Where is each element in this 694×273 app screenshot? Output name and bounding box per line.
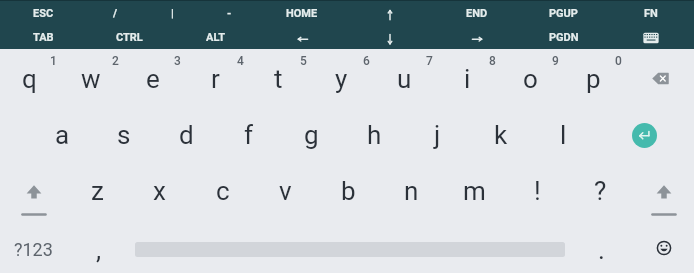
button[interactable]: t [249, 49, 312, 105]
button[interactable]: n [380, 161, 443, 217]
staticText: ALT [206, 31, 226, 44]
button[interactable]: m [443, 161, 506, 217]
button[interactable]: - [201, 1, 258, 25]
button[interactable]: x [128, 161, 191, 217]
button[interactable]: j [406, 105, 469, 161]
staticText: q [22, 64, 37, 94]
staticText: FN [644, 7, 658, 20]
staticText: v [279, 176, 292, 206]
staticText: ! [534, 176, 541, 206]
staticText: s [117, 120, 131, 150]
staticText: ? [594, 176, 607, 206]
button[interactable]: c [191, 161, 254, 217]
button[interactable]: Backspace [627, 49, 694, 105]
button[interactable]: a [31, 105, 93, 161]
button[interactable]: ?123 [0, 217, 66, 273]
staticText: PGDN [549, 31, 579, 44]
button[interactable]: h [343, 105, 406, 161]
staticText: CTRL [116, 31, 143, 44]
button[interactable]: PGDN [520, 25, 607, 49]
staticText: 1 [50, 54, 57, 68]
staticText: 8 [489, 54, 496, 68]
button[interactable]: ESC [0, 1, 87, 25]
staticText: c [216, 176, 230, 206]
staticText: / [113, 7, 118, 20]
staticText: ?123 [14, 239, 53, 260]
staticText: p [586, 64, 601, 94]
button[interactable]: Shift [632, 161, 694, 217]
button[interactable]: s [93, 105, 155, 161]
button[interactable]: u [375, 49, 438, 105]
staticText: g [304, 120, 319, 150]
button[interactable]: / [87, 1, 144, 25]
button[interactable]: . [568, 217, 631, 273]
staticText: 6 [363, 54, 370, 68]
staticText: l [560, 120, 567, 150]
button[interactable]: g [280, 105, 343, 161]
staticText: . [598, 235, 605, 265]
staticText: TAB [33, 31, 54, 44]
button[interactable]: TAB [0, 25, 86, 49]
button[interactable]: z [66, 161, 128, 217]
staticText: n [404, 176, 419, 206]
staticText: r [211, 64, 220, 94]
staticText: x [153, 176, 166, 206]
staticText: m [463, 176, 486, 206]
button[interactable]: Arrow right [433, 25, 520, 49]
staticText: u [397, 64, 412, 94]
staticText: f [244, 120, 254, 150]
staticText: 0 [615, 54, 622, 68]
staticText: HOME [286, 7, 318, 20]
staticText: b [341, 176, 356, 206]
button[interactable]: END [433, 1, 520, 25]
button[interactable]: ALT [172, 25, 259, 49]
staticText: j [434, 120, 441, 150]
staticText: y [335, 64, 348, 94]
staticText: t [274, 64, 283, 94]
staticText: , [96, 235, 102, 265]
button[interactable]: HOME [258, 1, 346, 25]
staticText: 4 [237, 54, 244, 68]
button[interactable]: Shift [0, 161, 66, 217]
button[interactable]: p [564, 49, 627, 105]
staticText: a [55, 120, 70, 150]
staticText: h [367, 120, 382, 150]
button[interactable]: ? [569, 161, 632, 217]
staticText: e [146, 64, 160, 94]
button[interactable]: Arrow down [346, 25, 433, 49]
button[interactable]: b [317, 161, 380, 217]
button[interactable]: o [501, 49, 564, 105]
staticText: PGUP [549, 7, 578, 20]
button[interactable]: r [186, 49, 249, 105]
button[interactable]: Emoji [631, 217, 694, 273]
button[interactable]: FN [607, 1, 694, 25]
button[interactable]: i [438, 49, 501, 105]
button[interactable]: e [124, 49, 186, 105]
staticText: d [179, 120, 194, 150]
button[interactable]: Arrow up [346, 1, 433, 25]
button[interactable]: CTRL [86, 25, 172, 49]
button[interactable]: Space [132, 217, 568, 273]
button[interactable]: y [312, 49, 375, 105]
staticText: w [81, 64, 101, 94]
button[interactable]: d [155, 105, 217, 161]
staticText: i [464, 64, 471, 94]
button[interactable]: , [66, 217, 132, 273]
button[interactable]: ! [506, 161, 569, 217]
button[interactable]: w [62, 49, 124, 105]
button[interactable]: f [217, 105, 280, 161]
button[interactable]: v [254, 161, 317, 217]
button[interactable]: | [144, 1, 201, 25]
staticText: END [466, 7, 488, 20]
staticText: z [91, 176, 104, 206]
staticText: | [171, 7, 174, 20]
button[interactable]: PGUP [520, 1, 607, 25]
button[interactable]: Switch keyboard [607, 25, 694, 49]
button[interactable]: k [469, 105, 532, 161]
button[interactable]: l [532, 105, 595, 161]
button[interactable]: q [0, 49, 62, 105]
button[interactable]: Enter [595, 105, 694, 161]
button[interactable]: Arrow left [259, 25, 346, 49]
staticText: 9 [552, 54, 559, 68]
staticText: 2 [112, 54, 119, 68]
